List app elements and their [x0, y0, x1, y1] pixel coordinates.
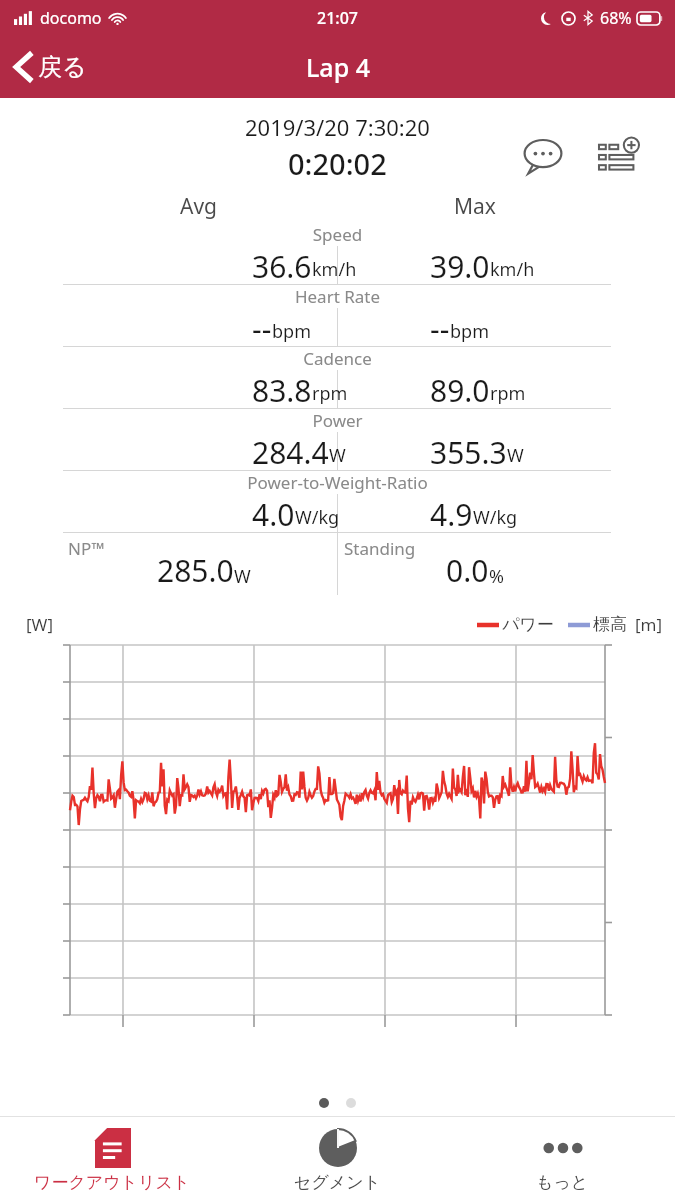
staticText: W — [234, 564, 251, 589]
staticText: セグメント — [294, 1172, 381, 1193]
staticText: NP™ — [68, 537, 105, 560]
staticText: % — [489, 564, 504, 589]
staticText: Standing — [344, 537, 416, 560]
staticText: W — [507, 443, 524, 468]
staticText: km/h — [312, 257, 357, 282]
staticText: 355.3 — [430, 432, 507, 470]
staticText: 4.0 — [252, 494, 295, 532]
button[interactable]: Comments — [517, 134, 569, 180]
button[interactable]: 戻る — [0, 44, 101, 90]
staticText: 2019/3/20 7:30:20 — [245, 112, 430, 142]
staticText: 0.0 — [446, 550, 489, 591]
staticText: 36.6 — [252, 246, 312, 284]
staticText: Lap 4 — [306, 50, 370, 84]
staticText: 0:20:02 — [288, 144, 387, 183]
staticText: Power — [0, 409, 675, 432]
staticText: 21:07 — [317, 7, 358, 29]
staticText: Cadence — [0, 347, 675, 370]
staticText: 39.0 — [430, 246, 490, 284]
staticText: W/kg — [473, 505, 518, 530]
staticText: 戻る — [38, 52, 87, 82]
staticText: bpm — [450, 319, 489, 344]
staticText: [m] — [635, 613, 663, 636]
staticText: -- — [252, 308, 272, 346]
staticText: 4.9 — [430, 494, 473, 532]
staticText: 89.0 — [430, 370, 490, 408]
staticText: bpm — [272, 319, 311, 344]
staticText: パワー — [502, 614, 554, 635]
staticText: 284.4 — [252, 432, 329, 470]
staticText: -- — [430, 308, 450, 346]
staticText: Power-to-Weight-Ratio — [0, 471, 675, 494]
button[interactable]: Add to list — [593, 134, 645, 180]
staticText: 標高 — [593, 614, 627, 635]
staticText: W — [329, 443, 346, 468]
staticText: rpm — [312, 381, 348, 406]
staticText: Max — [454, 192, 496, 221]
button[interactable]: ワークアウトリスト — [0, 1119, 225, 1199]
staticText: Speed — [0, 223, 675, 246]
staticText: Avg — [180, 192, 218, 221]
button[interactable]: もっと — [450, 1119, 675, 1199]
staticText: 83.8 — [252, 370, 312, 408]
staticText: rpm — [490, 381, 526, 406]
staticText: ワークアウトリスト — [34, 1172, 191, 1193]
staticText: W/kg — [295, 505, 340, 530]
staticText: 285.0 — [157, 550, 234, 591]
staticText: もっと — [536, 1172, 589, 1193]
staticText: docomo — [40, 7, 102, 29]
staticText: 68% — [600, 7, 632, 29]
staticText: Heart Rate — [0, 285, 675, 308]
staticText: [W] — [26, 613, 53, 636]
button[interactable]: セグメント — [225, 1119, 450, 1199]
staticText: km/h — [490, 257, 535, 282]
